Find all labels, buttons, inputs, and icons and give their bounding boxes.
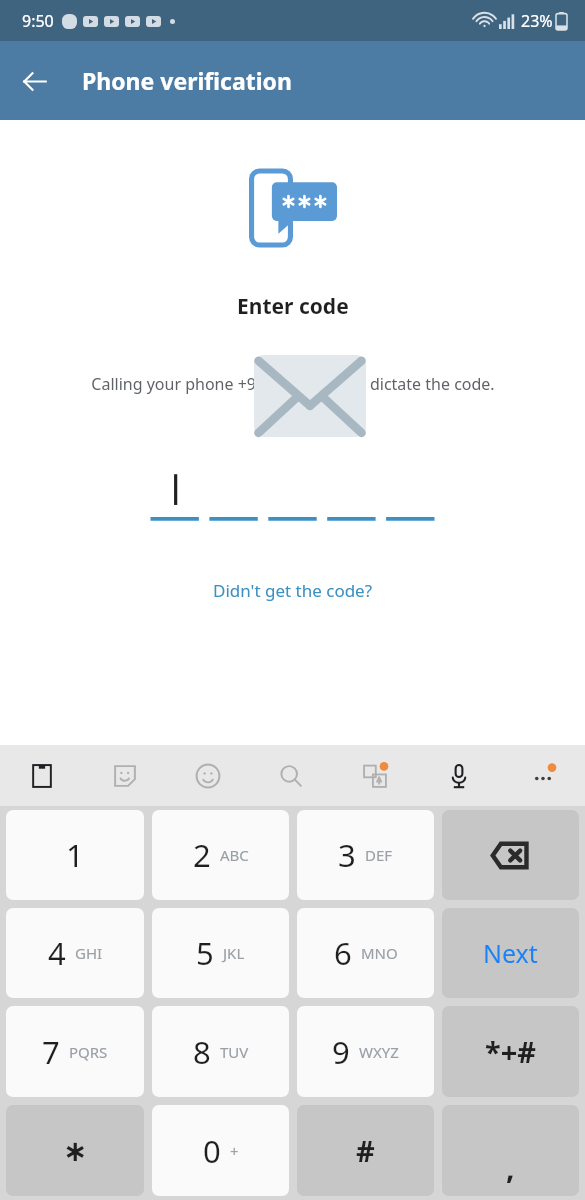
staticText: Didn't get the code? <box>213 579 373 602</box>
staticText: 8 <box>193 1031 211 1073</box>
button[interactable]: *+# <box>442 1006 579 1097</box>
button[interactable]: Search <box>249 745 333 806</box>
staticText: Phone verification <box>82 65 292 96</box>
button[interactable]: Back <box>8 55 60 107</box>
button[interactable]: , <box>442 1105 579 1196</box>
staticText: TUV <box>220 1042 249 1062</box>
staticText: Next <box>483 936 538 970</box>
staticText: 7 <box>42 1031 60 1073</box>
staticText: 3 <box>338 834 356 876</box>
staticText: # <box>356 1131 375 1170</box>
button[interactable]: 4 <box>6 908 144 998</box>
button[interactable]: 8 <box>152 1006 289 1097</box>
staticText: + <box>230 1141 239 1161</box>
button[interactable]: Translate <box>333 745 417 806</box>
staticText: ABC <box>220 845 249 865</box>
staticText: 6 <box>334 932 352 974</box>
button[interactable]: # <box>297 1105 434 1196</box>
staticText: MNO <box>361 943 398 963</box>
staticText: , <box>506 1147 515 1188</box>
staticText: Calling your phone +961 xxxxxxxx to dict… <box>91 373 495 395</box>
staticText: 4 <box>48 932 66 974</box>
button[interactable]: 1 <box>6 810 144 900</box>
button[interactable]: Emoji <box>166 745 249 806</box>
button[interactable]: Voice input <box>417 745 501 806</box>
staticText: GHI <box>75 943 103 963</box>
button[interactable]: 9 <box>297 1006 434 1097</box>
button[interactable]: 3 <box>297 810 434 900</box>
staticText: 0 <box>203 1130 221 1172</box>
staticText: PQRS <box>69 1042 108 1062</box>
button[interactable]: Backspace <box>442 810 579 900</box>
staticText: DEF <box>365 845 393 865</box>
button[interactable]: 6 <box>297 908 434 998</box>
staticText: JKL <box>223 943 245 963</box>
button[interactable]: Next <box>442 908 579 998</box>
button[interactable]: Didn't get the code? <box>203 575 383 606</box>
staticText: 1 <box>66 834 84 876</box>
button[interactable]: 2 <box>152 810 289 900</box>
staticText: 9 <box>332 1031 350 1073</box>
staticText: WXYZ <box>359 1042 399 1062</box>
staticText: 23% <box>521 10 553 32</box>
button[interactable]: More options <box>501 745 585 806</box>
staticText: 9:50 <box>22 10 54 32</box>
button[interactable]: 5 <box>152 908 289 998</box>
button[interactable]: Clipboard <box>0 745 83 806</box>
staticText: 5 <box>196 932 214 974</box>
button[interactable]: 7 <box>6 1006 144 1097</box>
button[interactable]: Stickers <box>83 745 166 806</box>
staticText: *+# <box>485 1032 537 1071</box>
button[interactable]: ∗ <box>6 1105 144 1196</box>
staticText: 2 <box>193 834 211 876</box>
staticText: ∗ <box>63 1134 88 1168</box>
staticText: Enter code <box>237 292 349 321</box>
button[interactable]: 0 <box>152 1105 289 1196</box>
